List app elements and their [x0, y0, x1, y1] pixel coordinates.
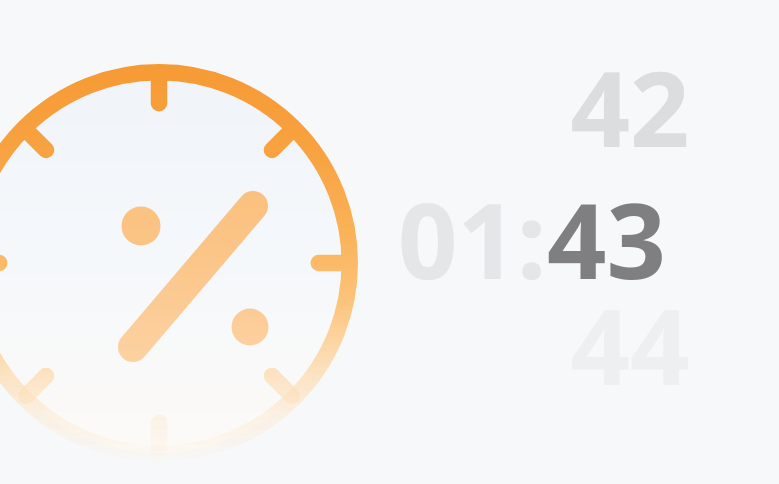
button[interactable]: 01: [398, 168, 718, 284]
staticText: 01: [398, 168, 547, 284]
staticText: 44 [540, 274, 720, 390]
staticText: 42 [540, 36, 720, 152]
button[interactable]: Limited time discount [0, 64, 358, 462]
staticText: 43 [547, 168, 666, 284]
